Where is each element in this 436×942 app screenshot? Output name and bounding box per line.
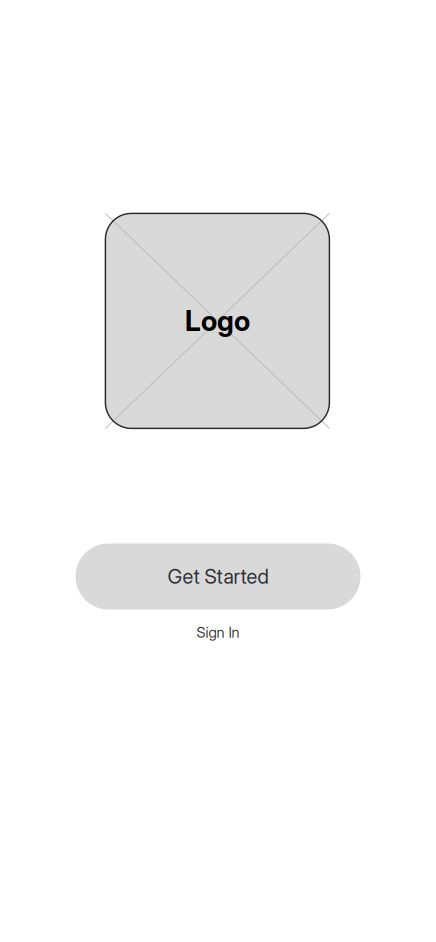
staticText: Sign In xyxy=(196,623,239,641)
staticText: Logo xyxy=(185,304,250,338)
button[interactable]: Sign In xyxy=(196,623,239,641)
staticText: Get Started xyxy=(167,564,268,589)
button[interactable]: Get Started xyxy=(75,543,360,609)
